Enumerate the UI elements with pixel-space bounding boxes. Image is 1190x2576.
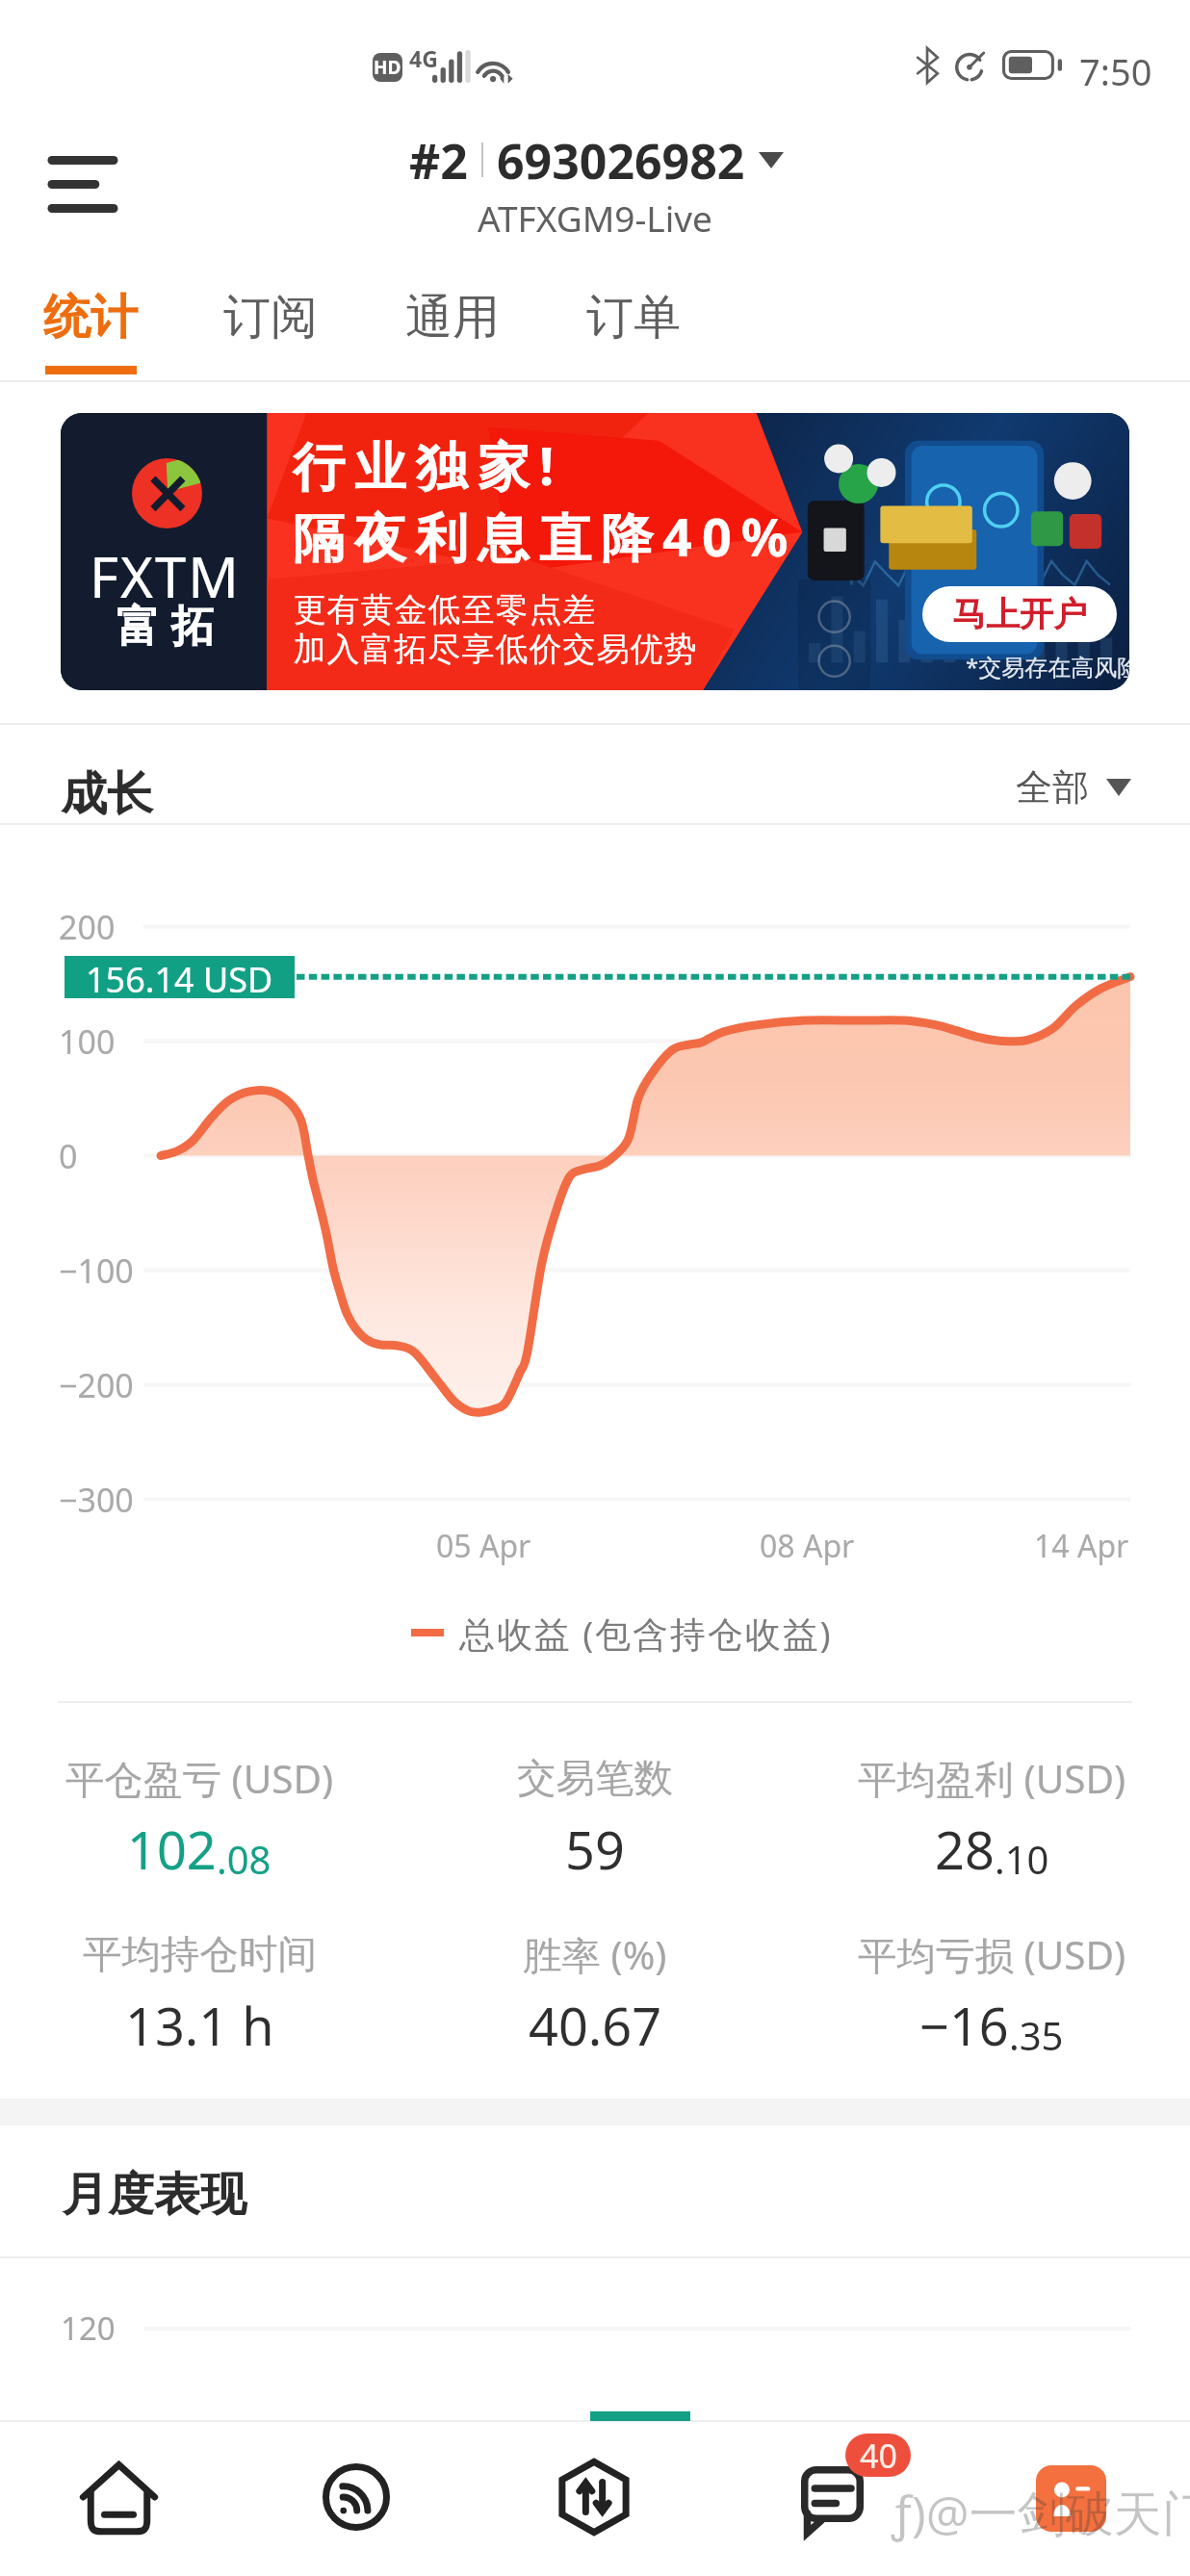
staticText: 平均持仓时间 <box>83 1930 317 1979</box>
button[interactable]: 通用 <box>362 279 543 380</box>
staticText: .10 <box>995 1833 1049 1885</box>
button[interactable]: Home <box>0 2422 238 2576</box>
staticText: 40 <box>860 2434 897 2477</box>
staticText: .35 <box>1009 2009 1064 2061</box>
staticText: 120 <box>61 2306 116 2350</box>
staticText: −16 <box>919 1990 1009 2061</box>
staticText: 行业独家! <box>293 429 564 501</box>
staticText: 订阅 <box>223 288 318 348</box>
staticText: 更有黄金低至零点差 <box>293 589 596 631</box>
staticText: −100 <box>59 1249 134 1293</box>
button[interactable]: Messages <box>713 2422 951 2576</box>
staticText: 全部 <box>1016 764 1089 811</box>
staticText: 马上开户 <box>952 593 1087 635</box>
staticText: 通用 <box>405 288 500 348</box>
staticText: *交易存在高风险 <box>966 651 1129 683</box>
staticText: HD <box>374 55 401 80</box>
staticText: 总收益 (包含持仓收益) <box>459 1609 833 1658</box>
staticText: 59 <box>565 1814 625 1885</box>
staticText: 统计 <box>43 288 138 348</box>
staticText: 102 <box>127 1814 217 1885</box>
staticText: 交易笔数 <box>517 1754 673 1803</box>
staticText: ATFXGM9-Live <box>478 193 712 242</box>
staticText: 隔夜利息直降40% <box>293 501 798 572</box>
button[interactable]: Profile <box>951 2422 1189 2576</box>
button[interactable]: 订阅 <box>180 279 361 380</box>
staticText: 平均盈利 (USD) <box>858 1752 1126 1805</box>
staticText: 富 拓 <box>116 595 215 654</box>
staticText: 7:50 <box>1079 46 1152 89</box>
staticText: 0 <box>59 1134 78 1178</box>
staticText: 693026982 <box>497 128 745 192</box>
staticText: 平均亏损 (USD) <box>858 1928 1126 1981</box>
button[interactable]: #2 <box>375 128 817 192</box>
button[interactable]: Signals <box>238 2422 476 2576</box>
button[interactable]: 全部 <box>1016 743 1151 832</box>
staticText: .08 <box>217 1833 272 1885</box>
staticText: 100 <box>59 1019 116 1064</box>
staticText: 156.14 USD <box>86 956 273 998</box>
staticText: −200 <box>59 1363 134 1407</box>
staticText: FXTM <box>90 538 241 614</box>
staticText: #2 <box>409 128 468 192</box>
button[interactable]: 统计 <box>0 279 181 380</box>
button[interactable]: Trade <box>476 2422 713 2576</box>
staticText: −300 <box>59 1478 134 1522</box>
staticText: 胜率 (%) <box>523 1928 667 1981</box>
staticText: 月度表现 <box>62 2166 246 2224</box>
staticText: 28 <box>935 1814 995 1885</box>
button[interactable]: 订单 <box>543 279 724 380</box>
staticText: 加入富拓尽享低价交易优势 <box>293 629 697 670</box>
staticText: 成长 <box>61 765 153 823</box>
staticText: 40.67 <box>529 1990 662 2061</box>
staticText: 14 Apr <box>1034 1525 1129 1567</box>
staticText: 13.1 h <box>125 1990 274 2061</box>
staticText: 订单 <box>586 288 681 348</box>
staticText: 平仓盈亏 (USD) <box>65 1752 334 1805</box>
staticText: 05 Apr <box>436 1525 531 1567</box>
staticText: 4G <box>409 43 438 73</box>
button[interactable]: FXTM advertisement <box>61 413 1129 690</box>
button[interactable]: Menu <box>35 136 131 232</box>
staticText: ƒ)@一剑破天门 <box>892 2480 1190 2545</box>
staticText: 08 Apr <box>760 1525 855 1567</box>
staticText: 200 <box>59 905 116 949</box>
